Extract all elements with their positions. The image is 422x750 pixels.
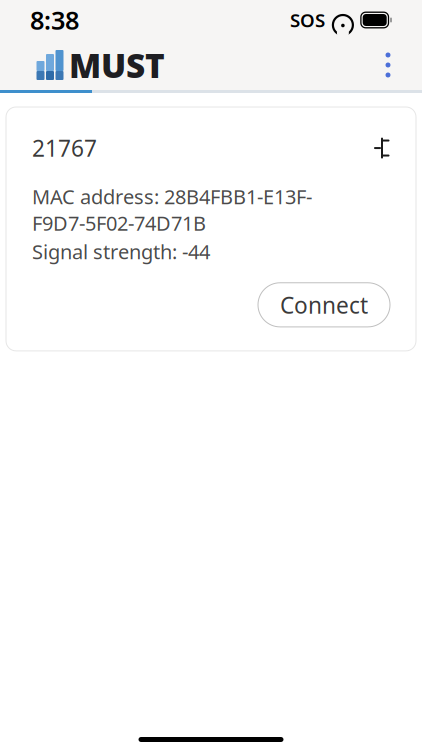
staticText: 8:38 (30, 3, 79, 37)
staticText: 21767 (32, 133, 97, 163)
button[interactable]: More options (366, 41, 410, 89)
staticText: SOS (290, 8, 325, 32)
staticText: MUST (69, 43, 165, 87)
staticText: Connect (280, 290, 368, 320)
staticText: Signal strength: -44 (32, 238, 210, 265)
button[interactable]: Connect (258, 283, 390, 327)
staticText: MAC address: 28B4FBB1-E13F-F9D7-5F02-74D… (32, 183, 312, 236)
